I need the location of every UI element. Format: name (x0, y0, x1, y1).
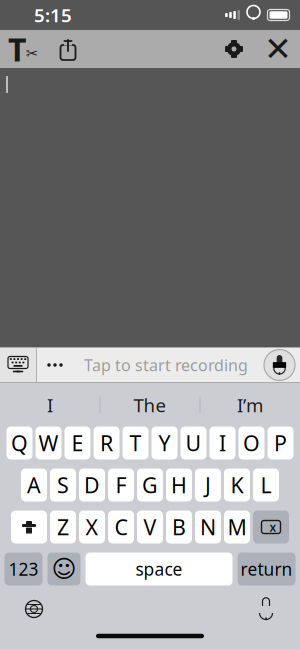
button[interactable]: G (137, 468, 163, 501)
button[interactable]: Dictate (244, 592, 288, 626)
staticText: space (135, 557, 182, 580)
staticText: S (57, 471, 69, 499)
staticText: X (85, 513, 98, 541)
button[interactable]: D (79, 468, 105, 501)
button[interactable]: Close (256, 30, 300, 68)
button[interactable]: Clear text (0, 30, 46, 68)
staticText: J (205, 471, 211, 499)
staticText: W (38, 429, 58, 457)
staticText: C (114, 513, 127, 541)
button[interactable]: Tap to start recording (73, 347, 259, 383)
button[interactable]: U (180, 426, 206, 459)
staticText: Q (11, 429, 28, 457)
button[interactable]: Shift (11, 510, 47, 543)
button[interactable]: V (137, 510, 163, 543)
staticText: T (8, 28, 26, 70)
staticText: N (200, 513, 216, 541)
button[interactable]: I (209, 426, 235, 459)
button[interactable]: H (166, 468, 192, 501)
button[interactable]: return (237, 552, 295, 585)
staticText: Y (158, 429, 170, 457)
button[interactable]: Next keyboard (12, 592, 56, 626)
staticText: G (142, 471, 158, 499)
staticText: R (100, 429, 113, 457)
button[interactable]: Hide keyboard (0, 347, 36, 383)
button[interactable]: X (79, 510, 105, 543)
button[interactable]: Z (50, 510, 76, 543)
staticText: F (115, 471, 126, 499)
button[interactable]: space (85, 552, 232, 585)
staticText: B (172, 513, 186, 541)
staticText: K (230, 471, 243, 499)
button[interactable]: C (108, 510, 134, 543)
staticText: A (27, 471, 41, 499)
button[interactable]: I (0, 388, 99, 422)
staticText: I’m (237, 393, 263, 417)
staticText: M (227, 513, 246, 541)
staticText: The (133, 393, 166, 417)
button[interactable]: Q (6, 426, 32, 459)
button[interactable]: The (100, 388, 199, 422)
staticText: E (71, 429, 83, 457)
button[interactable]: J (195, 468, 221, 501)
staticText: I (47, 393, 53, 417)
button[interactable]: A (21, 468, 47, 501)
button[interactable]: Emoji (47, 552, 80, 585)
button[interactable]: I’m (200, 388, 299, 422)
staticText: ☺ (51, 555, 76, 583)
button[interactable]: K (224, 468, 250, 501)
staticText: 123 (8, 557, 38, 580)
staticText: ✕ (264, 30, 292, 68)
staticText: Z (57, 513, 69, 541)
button[interactable]: W (35, 426, 61, 459)
staticText: return (240, 557, 292, 580)
button[interactable]: R (93, 426, 119, 459)
staticText: 5:15 (34, 3, 72, 27)
staticText: T (129, 429, 141, 457)
button[interactable]: More options (37, 347, 73, 383)
staticText: V (143, 513, 156, 541)
staticText: D (84, 471, 100, 499)
staticText: Tap to start recording (84, 354, 248, 376)
button[interactable]: P (267, 426, 293, 459)
button[interactable]: O (238, 426, 264, 459)
button[interactable]: B (166, 510, 192, 543)
button[interactable]: E (64, 426, 90, 459)
button[interactable]: 123 (4, 552, 42, 585)
button[interactable]: S (50, 468, 76, 501)
button[interactable]: M (224, 510, 250, 543)
button[interactable]: Start recording (259, 347, 300, 383)
button[interactable]: Share (46, 30, 90, 68)
staticText: U (185, 429, 201, 457)
staticText: x (269, 519, 276, 535)
button[interactable]: Settings (212, 30, 256, 68)
button[interactable]: N (195, 510, 221, 543)
staticText: O (243, 429, 260, 457)
button[interactable]: Y (151, 426, 177, 459)
button[interactable]: T (122, 426, 148, 459)
staticText: ✂ (26, 45, 38, 62)
staticText: L (260, 471, 271, 499)
staticText: H (171, 471, 187, 499)
staticText: P (274, 429, 287, 457)
button[interactable]: L (253, 468, 279, 501)
button[interactable]: F (108, 468, 134, 501)
button[interactable]: Delete (253, 510, 289, 543)
staticText: I (219, 429, 226, 457)
